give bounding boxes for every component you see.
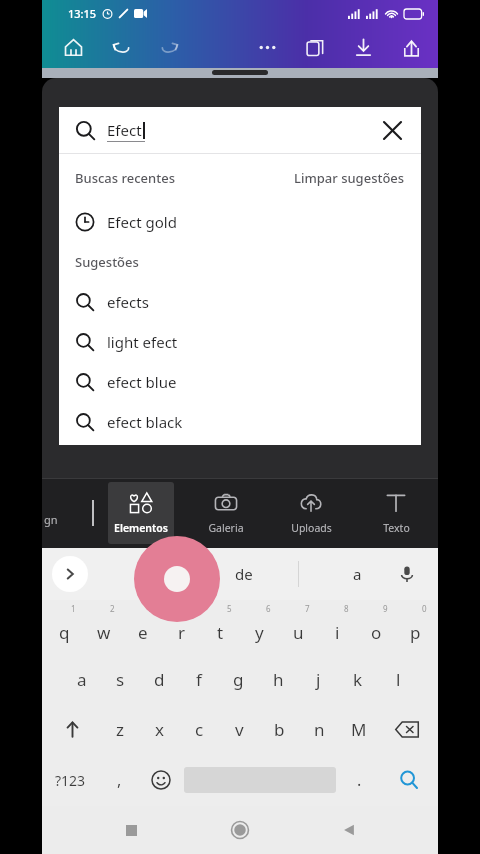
- staticText: 9: [383, 603, 388, 614]
- staticText: Efect gold: [107, 212, 177, 232]
- button[interactable]: 9: [357, 600, 396, 654]
- staticText: n: [314, 718, 325, 741]
- button[interactable]: 3: [123, 600, 162, 654]
- button[interactable]: Elementos: [108, 482, 174, 544]
- staticText: q: [59, 621, 70, 644]
- button[interactable]: Home: [54, 28, 92, 66]
- button[interactable]: z: [100, 704, 139, 754]
- button[interactable]: light efect: [59, 322, 421, 362]
- staticText: e: [138, 621, 148, 644]
- staticText: 7: [305, 603, 310, 614]
- staticText: 6: [266, 603, 271, 614]
- staticText: u: [293, 621, 304, 644]
- staticText: 2: [110, 603, 115, 614]
- staticText: efect blue: [107, 372, 177, 392]
- button[interactable]: efect blue: [59, 362, 421, 402]
- button[interactable]: efects: [59, 282, 421, 322]
- button[interactable]: ?123: [42, 754, 99, 806]
- staticText: v: [235, 718, 244, 741]
- staticText: a: [77, 668, 87, 691]
- button[interactable]: Search: [380, 754, 438, 806]
- button[interactable]: d: [140, 654, 179, 704]
- button[interactable]: k: [338, 654, 378, 704]
- staticText: k: [353, 668, 363, 691]
- button[interactable]: g: [218, 654, 258, 704]
- staticText: ,: [117, 769, 122, 791]
- button[interactable]: 5: [201, 600, 240, 654]
- staticText: gn: [44, 512, 58, 527]
- staticText: 13:15: [68, 6, 97, 21]
- button[interactable]: Shift: [45, 704, 100, 754]
- button[interactable]: .: [339, 754, 380, 806]
- button[interactable]: Texto: [363, 482, 429, 544]
- button[interactable]: Limpar sugestões: [294, 169, 405, 187]
- staticText: y: [255, 621, 264, 644]
- button[interactable]: Download: [344, 28, 382, 66]
- button[interactable]: 8: [318, 600, 357, 654]
- staticText: light efect: [107, 332, 178, 352]
- staticText: w: [97, 621, 111, 644]
- staticText: 5: [227, 603, 232, 614]
- button[interactable]: h: [258, 654, 298, 704]
- button[interactable]: 0: [396, 600, 435, 654]
- button[interactable]: j: [298, 654, 338, 704]
- staticText: Buscas recentes: [75, 169, 175, 187]
- staticText: .: [357, 769, 362, 791]
- button[interactable]: c: [179, 704, 219, 754]
- staticText: 0: [422, 603, 427, 614]
- button[interactable]: v: [219, 704, 259, 754]
- button[interactable]: 4: [162, 600, 201, 654]
- staticText: p: [410, 621, 421, 644]
- button[interactable]: Pages: [296, 28, 334, 66]
- button[interactable]: Redo: [150, 28, 188, 66]
- button[interactable]: Expand toolbar: [52, 556, 88, 592]
- staticText: d: [154, 668, 165, 691]
- button[interactable]: n: [299, 704, 339, 754]
- button[interactable]: efect black: [59, 402, 421, 442]
- button[interactable]: Efect: [59, 107, 421, 153]
- staticText: t: [217, 621, 224, 644]
- button[interactable]: Efect gold: [59, 202, 421, 242]
- button[interactable]: ,: [99, 754, 140, 806]
- button[interactable]: Close search: [377, 115, 407, 145]
- button[interactable]: s: [101, 654, 140, 704]
- staticText: f: [196, 668, 202, 691]
- button[interactable]: 7: [279, 600, 318, 654]
- button[interactable]: M: [339, 704, 379, 754]
- staticText: l: [396, 668, 401, 691]
- button[interactable]: 2: [84, 600, 123, 654]
- button[interactable]: de: [235, 564, 253, 584]
- button[interactable]: Backspace: [379, 704, 435, 754]
- button[interactable]: Emoji: [140, 754, 181, 806]
- staticText: s: [116, 668, 125, 691]
- staticText: r: [178, 621, 186, 644]
- button[interactable]: 6: [240, 600, 279, 654]
- button[interactable]: More options: [248, 28, 286, 66]
- staticText: 1: [71, 603, 76, 614]
- button[interactable]: Back: [330, 811, 368, 849]
- button[interactable]: f: [179, 654, 218, 704]
- button[interactable]: Undo: [102, 28, 140, 66]
- button[interactable]: Uploads: [278, 482, 344, 544]
- button[interactable]: 1: [45, 600, 84, 654]
- staticText: Galeria: [208, 521, 244, 535]
- button[interactable]: a: [62, 654, 101, 704]
- button[interactable]: x: [139, 704, 179, 754]
- button[interactable]: Recents: [112, 811, 150, 849]
- staticText: g: [233, 668, 244, 691]
- button[interactable]: b: [259, 704, 299, 754]
- button[interactable]: Share: [392, 28, 430, 66]
- staticText: Sugestões: [75, 253, 139, 271]
- button[interactable]: a: [353, 564, 362, 584]
- staticText: x: [155, 718, 164, 741]
- button[interactable]: Galeria: [193, 482, 259, 544]
- button[interactable]: Home: [221, 811, 259, 849]
- staticText: Elementos: [114, 521, 168, 535]
- staticText: efects: [107, 292, 149, 312]
- staticText: i: [335, 621, 340, 644]
- button[interactable]: Voice input: [392, 559, 422, 589]
- button[interactable]: l: [378, 654, 418, 704]
- staticText: o: [371, 621, 382, 644]
